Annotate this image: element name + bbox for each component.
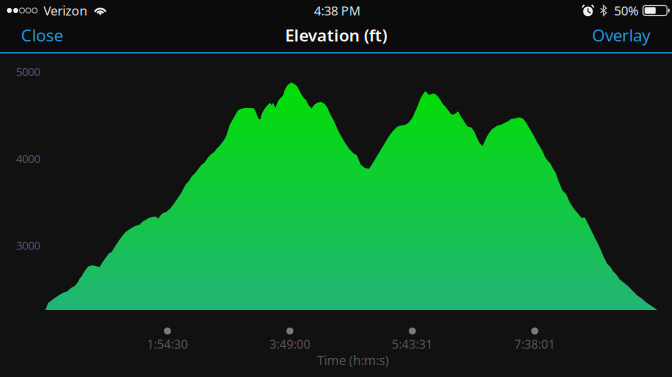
- staticText: 4000: [16, 151, 40, 166]
- staticText: Verizon: [43, 2, 87, 19]
- button[interactable]: Overlay: [586, 19, 657, 51]
- staticText: 3:49:00: [269, 336, 310, 352]
- staticText: 7:38:01: [514, 336, 555, 352]
- staticText: 50%: [614, 2, 639, 19]
- staticText: 1:54:30: [147, 336, 188, 352]
- staticText: Elevation (ft): [285, 24, 387, 46]
- button[interactable]: Close: [15, 19, 69, 51]
- staticText: Overlay: [592, 24, 651, 46]
- staticText: 5:43:31: [392, 336, 433, 352]
- staticText: 5000: [16, 64, 40, 79]
- staticText: Close: [21, 24, 63, 46]
- staticText: Time (h:m:s): [317, 351, 389, 369]
- staticText: 4:38 PM: [314, 2, 360, 19]
- staticText: 3000: [16, 238, 40, 253]
